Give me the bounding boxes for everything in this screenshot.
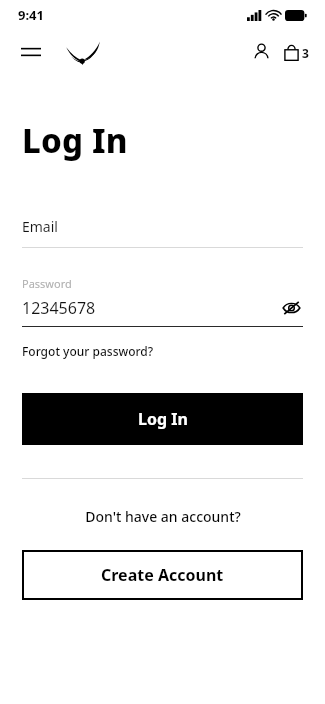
staticText: Log In [138, 408, 188, 430]
button[interactable]: Create Account [22, 550, 303, 600]
button[interactable]: Cart, 3 items [284, 44, 309, 61]
button[interactable]: Menu [16, 37, 46, 67]
staticText: Password [22, 276, 72, 291]
staticText: 3 [302, 45, 309, 61]
staticText: Create Account [101, 564, 224, 586]
button[interactable]: Log In [22, 393, 303, 445]
button[interactable]: Account [246, 37, 276, 67]
button[interactable]: Email [22, 213, 303, 239]
button[interactable]: Forgot your password? [22, 343, 154, 359]
staticText: Don't have an account? [85, 507, 241, 526]
staticText: 12345678 [22, 297, 96, 319]
staticText: 9:41 [18, 6, 44, 24]
staticText: Email [22, 217, 58, 236]
button[interactable]: Hide password [279, 296, 303, 320]
staticText: Log In [22, 118, 128, 163]
button[interactable]: 12345678 [22, 296, 303, 320]
staticText: Forgot your password? [22, 343, 154, 359]
button[interactable]: Logo [60, 37, 106, 67]
